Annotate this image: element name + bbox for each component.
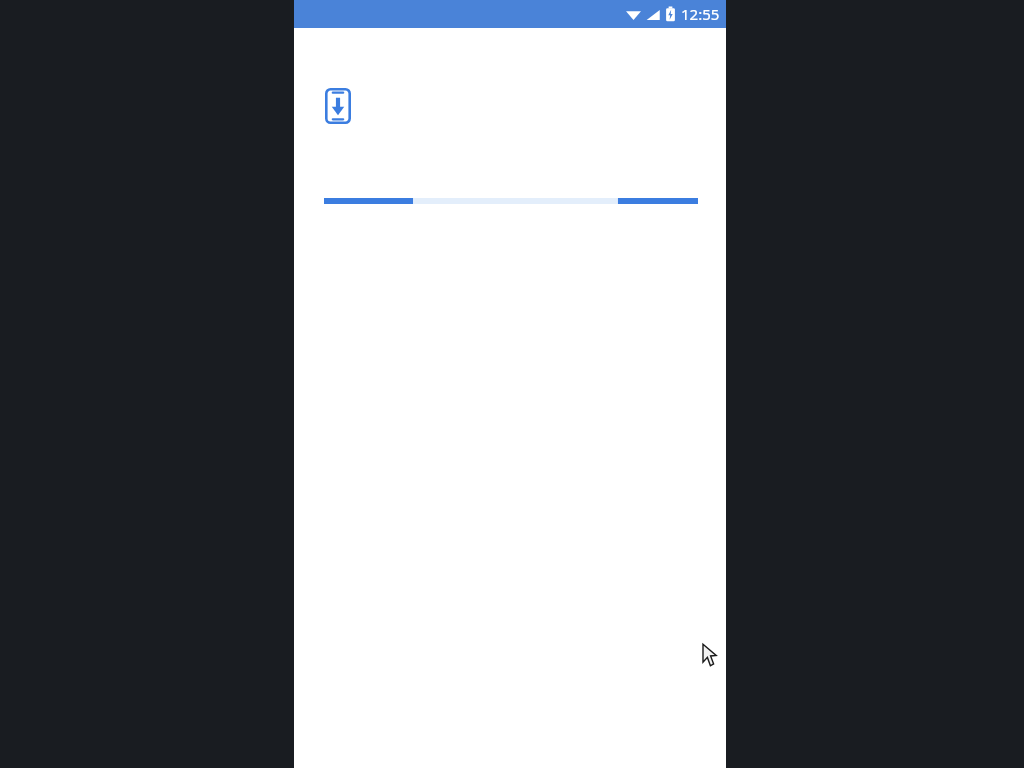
staticText: 12:55 xyxy=(681,4,720,24)
button[interactable]: System update download xyxy=(325,88,351,124)
